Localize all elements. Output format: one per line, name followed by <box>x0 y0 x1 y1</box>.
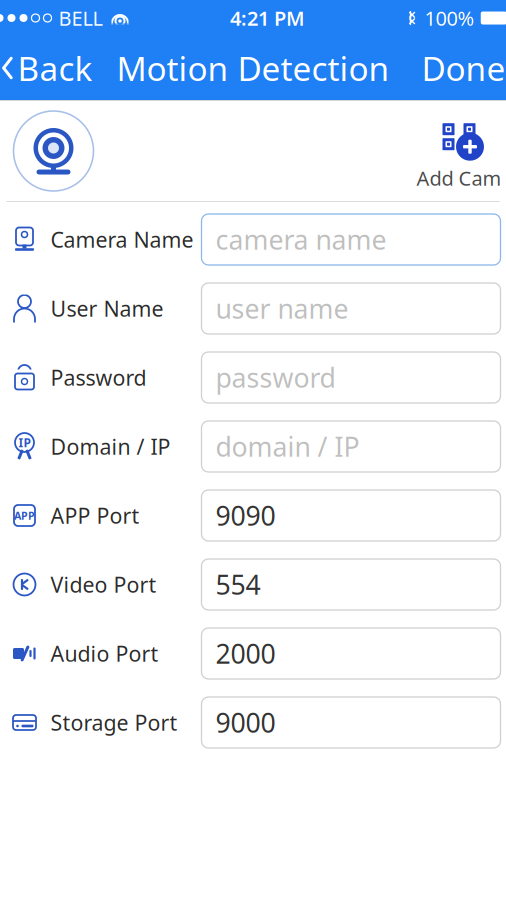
staticText: 9000 <box>215 705 275 740</box>
button[interactable]: 2000 <box>201 628 500 679</box>
staticText: IP <box>18 434 30 450</box>
button[interactable]: Add Cam <box>412 111 505 191</box>
staticText: Add Cam <box>416 165 501 191</box>
staticText: Audio Port <box>50 639 158 668</box>
button[interactable]: Done <box>415 40 506 96</box>
button[interactable]: Back <box>0 40 98 96</box>
button[interactable]: domain / IP <box>201 421 500 472</box>
staticText: 4:21 PM <box>230 5 305 31</box>
staticText: Motion Detection <box>116 46 389 90</box>
staticText: 9090 <box>215 498 275 533</box>
button[interactable]: 9090 <box>201 490 500 541</box>
button[interactable]: 9000 <box>201 697 500 748</box>
staticText: Password <box>50 363 146 392</box>
staticText: APP Port <box>50 501 139 530</box>
button[interactable]: 554 <box>201 559 500 610</box>
staticText: 2000 <box>215 636 275 671</box>
staticText: APP <box>14 508 35 523</box>
staticText: Camera Name <box>50 225 193 254</box>
staticText: 554 <box>215 567 260 602</box>
button[interactable]: camera name <box>201 214 500 265</box>
staticText: Domain / IP <box>50 432 170 461</box>
staticText: Video Port <box>50 570 156 599</box>
staticText: user name <box>215 291 348 326</box>
staticText: domain / IP <box>215 429 359 464</box>
staticText: camera name <box>215 222 386 257</box>
staticText: 100% <box>424 5 474 31</box>
staticText: password <box>215 360 335 395</box>
staticText: BELL <box>58 5 102 31</box>
staticText: Done <box>421 46 505 90</box>
staticText: User Name <box>50 294 163 323</box>
staticText: Back <box>17 46 92 90</box>
staticText: Storage Port <box>50 708 177 737</box>
button[interactable]: password <box>201 352 500 403</box>
button[interactable]: user name <box>201 283 500 334</box>
